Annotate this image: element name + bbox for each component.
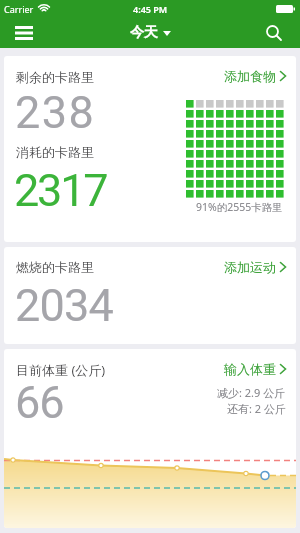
button[interactable] — [10, 19, 38, 47]
staticText: 2034 — [15, 279, 113, 332]
staticText: 今天 — [130, 24, 158, 42]
staticText: 剩余的卡路里 — [16, 69, 94, 85]
button[interactable]: 输入体重 — [224, 361, 286, 377]
staticText: 4:45 PM — [133, 3, 168, 15]
staticText: 2317 — [14, 164, 107, 217]
staticText: 添加运动 — [224, 259, 276, 275]
staticText: 消耗的卡路里 — [16, 144, 94, 160]
staticText: Carrier — [4, 3, 34, 15]
staticText: 目前体重 (公斤) — [16, 361, 106, 379]
staticText: 燃烧的卡路里 — [16, 259, 94, 275]
button[interactable]: 添加运动 — [224, 259, 286, 275]
staticText: 输入体重 — [224, 361, 276, 377]
button[interactable]: 添加食物 — [224, 68, 286, 84]
button[interactable]: 今天 — [130, 24, 171, 42]
staticText: 减少: 2.9 公斤 — [217, 385, 286, 400]
staticText: 还有: 2 公斤 — [227, 401, 286, 416]
staticText: 91%的2555卡路里 — [196, 200, 283, 214]
staticText: 66 — [15, 376, 64, 429]
staticText: 添加食物 — [224, 68, 276, 84]
button[interactable] — [262, 21, 286, 45]
staticText: 238 — [15, 86, 96, 139]
